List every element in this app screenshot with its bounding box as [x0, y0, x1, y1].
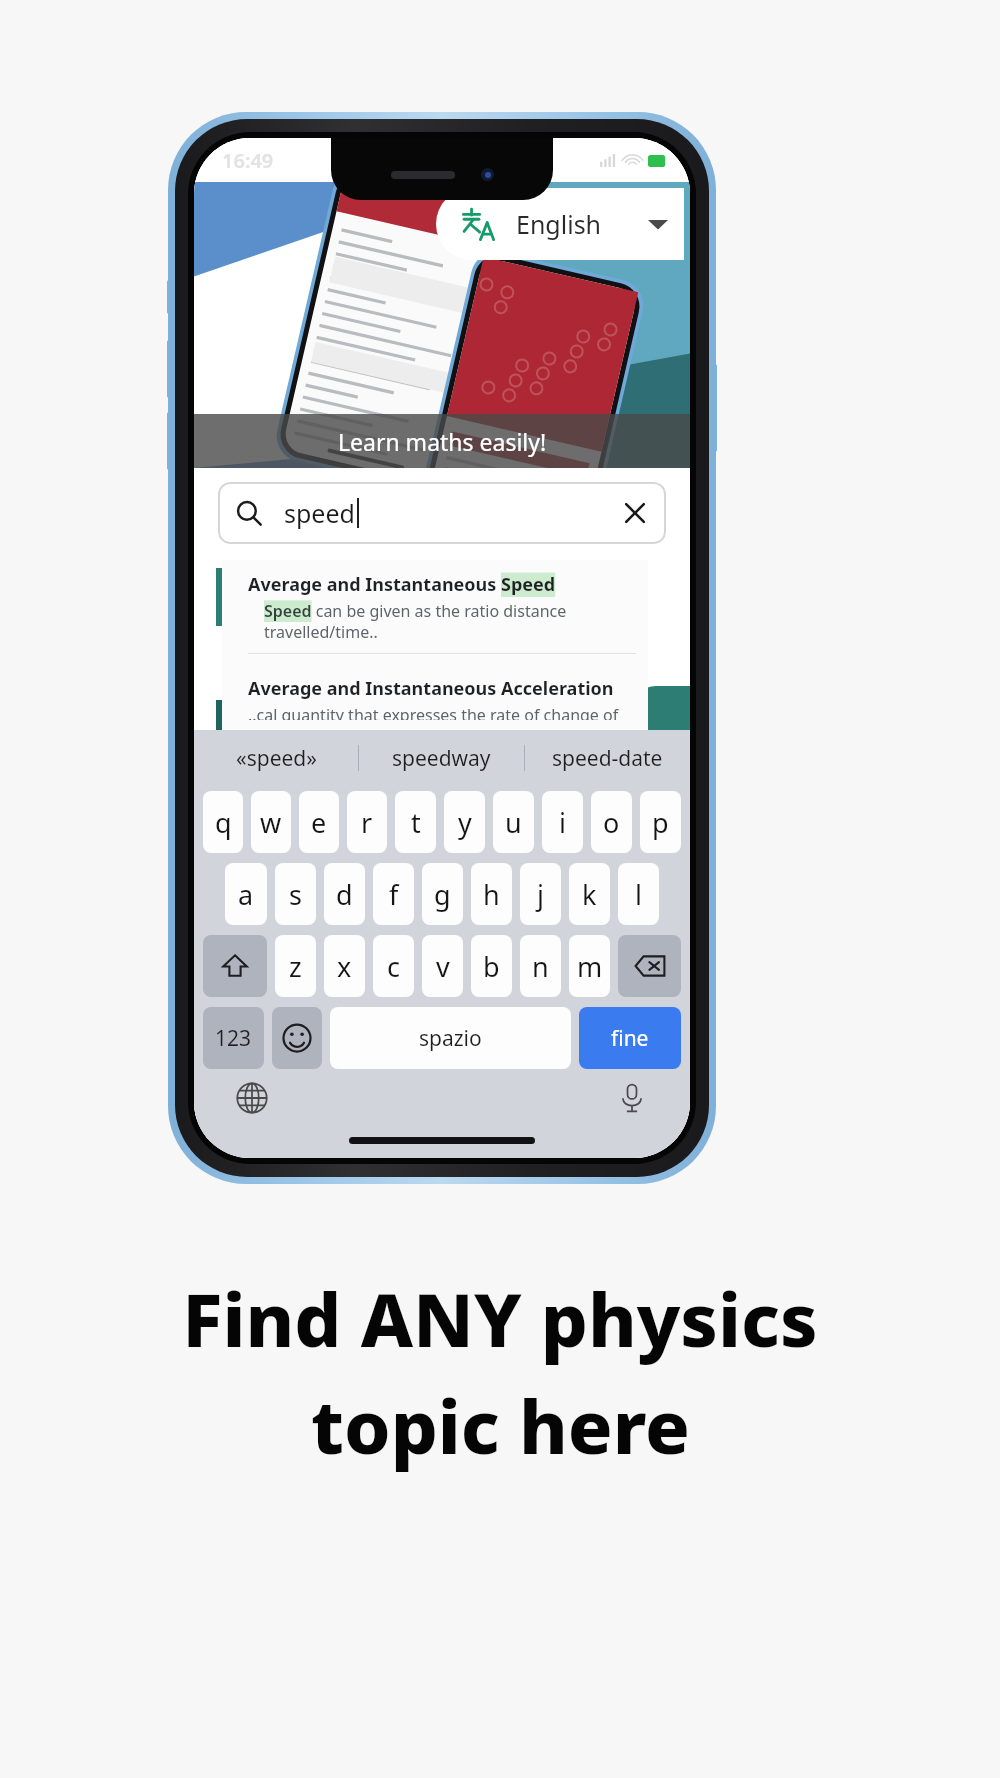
staticText: d — [336, 876, 353, 913]
staticText: f — [389, 876, 399, 913]
staticText: i — [559, 804, 566, 841]
button[interactable]: Clear search — [622, 500, 648, 526]
staticText: Average and Instantaneous Acceleration — [248, 676, 614, 701]
staticText: y — [458, 804, 472, 841]
button[interactable]: f — [373, 863, 414, 925]
button[interactable]: n — [520, 935, 561, 997]
button[interactable]: Average and Instantaneous Speed — [222, 560, 648, 664]
button[interactable]: i — [542, 791, 583, 853]
button[interactable]: Emoji — [272, 1007, 322, 1069]
staticText: topic here — [311, 1375, 690, 1476]
staticText: 16:49 — [222, 147, 274, 174]
staticText: Speed can be given as the ratio distance… — [264, 600, 636, 643]
button[interactable]: Change language — [236, 1082, 268, 1114]
button[interactable]: d — [324, 863, 365, 925]
button[interactable]: m — [569, 935, 610, 997]
staticText: r — [361, 804, 373, 841]
button[interactable]: «speed» — [194, 730, 358, 786]
staticText: h — [483, 876, 500, 913]
staticText: Average and Instantaneous Speed — [248, 572, 556, 597]
staticText: q — [215, 804, 232, 841]
staticText: j — [537, 876, 544, 913]
button[interactable]: w — [251, 791, 291, 853]
button[interactable]: Average and Instantaneous Acceleration — [222, 664, 648, 730]
button[interactable]: h — [471, 863, 512, 925]
staticText: English — [516, 207, 602, 241]
button[interactable]: x — [324, 935, 365, 997]
button[interactable]: u — [493, 791, 534, 853]
button[interactable]: English — [436, 188, 684, 260]
staticText: m — [577, 948, 603, 985]
staticText: z — [289, 948, 302, 985]
staticText: b — [483, 948, 500, 985]
button[interactable]: g — [422, 863, 463, 925]
button[interactable]: l — [618, 863, 659, 925]
button[interactable]: speed-date — [525, 730, 690, 786]
button[interactable]: v — [422, 935, 463, 997]
button[interactable]: r — [347, 791, 387, 853]
staticText: ..cal quantity that expresses the rate o… — [248, 704, 636, 720]
staticText: speed — [284, 496, 355, 530]
button[interactable]: k — [569, 863, 610, 925]
button[interactable]: 123 — [203, 1007, 264, 1069]
button[interactable]: Search — [218, 482, 666, 544]
staticText: Find ANY physics — [182, 1268, 818, 1369]
button[interactable]: Shift — [203, 935, 267, 997]
staticText: s — [289, 876, 302, 913]
button[interactable]: z — [275, 935, 316, 997]
button[interactable]: t — [395, 791, 436, 853]
staticText: «speed» — [236, 744, 317, 773]
button[interactable]: fine — [579, 1007, 681, 1069]
button[interactable]: q — [203, 791, 243, 853]
staticText: o — [603, 804, 620, 841]
staticText: Learn maths easily! — [338, 426, 547, 457]
staticText: g — [434, 876, 451, 913]
staticText: x — [337, 948, 352, 985]
button[interactable]: j — [520, 863, 561, 925]
staticText: v — [436, 948, 450, 985]
button[interactable]: c — [373, 935, 414, 997]
staticText: t — [411, 804, 421, 841]
button[interactable]: p — [640, 791, 681, 853]
button[interactable]: e — [299, 791, 339, 853]
staticText: fine — [611, 1024, 649, 1053]
staticText: speedway — [392, 744, 491, 773]
staticText: e — [311, 804, 327, 841]
staticText: a — [238, 876, 254, 913]
staticText: u — [505, 804, 522, 841]
button[interactable]: Backspace — [618, 935, 681, 997]
button[interactable]: b — [471, 935, 512, 997]
staticText: spazio — [419, 1024, 482, 1053]
button[interactable]: o — [591, 791, 632, 853]
staticText: speed-date — [552, 744, 663, 773]
button[interactable]: Voice input — [616, 1082, 648, 1114]
button[interactable]: a — [225, 863, 267, 925]
staticText: 123 — [215, 1024, 252, 1053]
staticText: k — [582, 876, 597, 913]
other: Search — [236, 500, 262, 526]
button[interactable]: spazio — [330, 1007, 571, 1069]
staticText: n — [532, 948, 549, 985]
staticText: p — [652, 804, 669, 841]
button[interactable]: s — [275, 863, 316, 925]
button[interactable]: y — [444, 791, 485, 853]
staticText: c — [387, 948, 400, 985]
staticText: l — [635, 876, 642, 913]
staticText: w — [260, 804, 282, 841]
button[interactable]: speedway — [359, 730, 524, 786]
